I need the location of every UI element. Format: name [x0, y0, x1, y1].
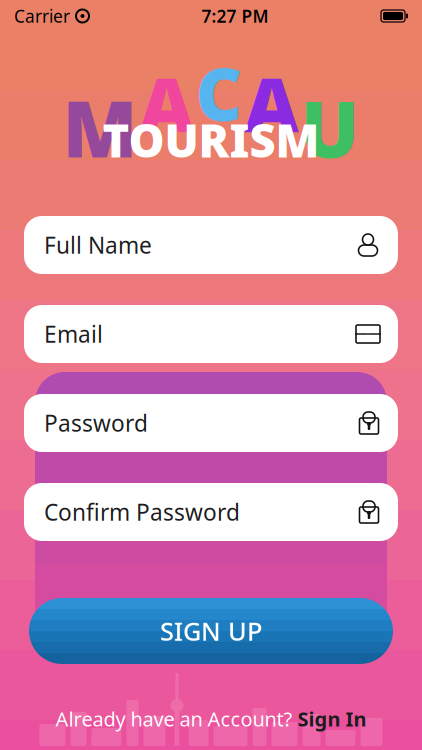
staticText: Confirm Password	[44, 497, 240, 527]
staticText: M	[62, 76, 137, 179]
staticText: C	[195, 45, 242, 141]
staticText: Carrier	[14, 4, 70, 27]
staticText: Sign In	[297, 705, 366, 732]
button[interactable]: Password	[24, 394, 398, 452]
staticText: Password	[44, 408, 148, 438]
staticText: A	[139, 54, 193, 153]
staticText: SIGN UP	[160, 614, 262, 648]
button[interactable]: Full Name	[24, 216, 398, 274]
staticText: 7:27 PM	[201, 4, 268, 27]
staticText: U	[300, 76, 359, 179]
button[interactable]: Already have an Account?	[45, 699, 376, 738]
staticText: A	[244, 54, 298, 153]
staticText: Full Name	[44, 230, 152, 260]
button[interactable]: SIGN UP	[29, 598, 393, 664]
staticText: Email	[44, 319, 103, 349]
button[interactable]: Confirm Password	[24, 483, 398, 541]
staticText: Already have an Account?	[55, 705, 292, 732]
staticText: TOURISM	[102, 110, 319, 170]
button[interactable]: Email	[24, 305, 398, 363]
